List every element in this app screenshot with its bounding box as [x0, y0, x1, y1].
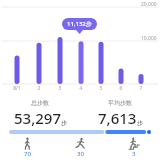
staticText: 7	[131, 85, 151, 92]
staticText: 2	[29, 85, 49, 92]
staticText: 8/1	[7, 85, 27, 92]
staticText: 70	[24, 150, 31, 158]
staticText: 步	[61, 119, 67, 127]
staticText: 5	[91, 85, 111, 92]
button[interactable]: 平均步数	[80, 99, 160, 128]
staticText: 7,613	[98, 108, 137, 128]
staticText: 6	[111, 85, 131, 92]
staticText: 平均步数	[108, 99, 132, 107]
button[interactable]: 总步数	[0, 99, 80, 128]
button[interactable]: Running	[54, 137, 107, 158]
staticText: 11,132步	[67, 20, 92, 28]
staticText: 30	[77, 150, 84, 158]
staticText: 步	[137, 119, 143, 127]
button[interactable]: Climbing	[107, 137, 160, 158]
button[interactable]	[9, 130, 151, 134]
staticText: 4	[71, 85, 91, 92]
button[interactable]: 20,000	[0, 0, 160, 92]
staticText: 10,000	[141, 35, 157, 42]
button[interactable]: Walking	[0, 137, 54, 158]
staticText: 53,297	[14, 108, 61, 128]
staticText: 20,000	[141, 1, 157, 8]
staticText: 3	[132, 150, 136, 158]
staticText: 3	[50, 85, 70, 92]
staticText: 总步数	[31, 99, 49, 107]
